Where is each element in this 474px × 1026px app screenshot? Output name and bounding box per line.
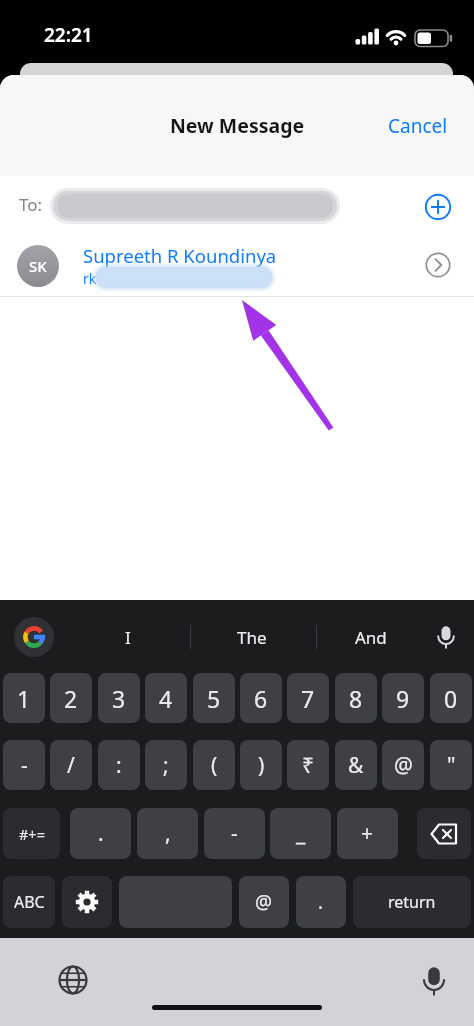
staticText: ABC <box>14 891 45 913</box>
button[interactable] <box>422 249 454 281</box>
staticText: - <box>21 751 28 780</box>
staticText: New Message <box>170 112 305 139</box>
button[interactable]: . <box>70 808 131 859</box>
button[interactable]: 7 <box>287 673 329 723</box>
staticText: rk <box>83 269 97 288</box>
staticText: 0 <box>444 683 458 714</box>
staticText: ( <box>211 751 218 780</box>
button[interactable]: 0 <box>430 673 472 723</box>
button[interactable]: 5 <box>193 673 235 723</box>
button[interactable]: 6 <box>240 673 282 723</box>
staticText: . <box>318 889 324 915</box>
staticText: 7 <box>301 683 315 714</box>
staticText: 9 <box>396 683 410 714</box>
staticText: #+= <box>19 824 45 844</box>
staticText: Supreeth R Koundinya <box>83 243 277 267</box>
button[interactable]: Cancel <box>376 112 460 140</box>
button[interactable]: 3 <box>98 673 140 723</box>
staticText: @ <box>255 889 273 915</box>
button[interactable]: _ <box>270 808 331 859</box>
staticText: _ <box>296 819 306 848</box>
button[interactable] <box>0 232 474 296</box>
button[interactable] <box>0 176 474 232</box>
staticText: ₹ <box>302 751 315 780</box>
button[interactable]: - <box>204 808 265 859</box>
staticText: 5 <box>207 683 221 714</box>
button[interactable]: 8 <box>335 673 377 723</box>
staticText: ; <box>163 751 169 780</box>
button[interactable]: return <box>353 876 471 928</box>
button[interactable]: 2 <box>50 673 92 723</box>
staticText: 6 <box>254 683 268 714</box>
button[interactable]: 1 <box>3 673 45 723</box>
staticText: ) <box>258 751 265 780</box>
button[interactable]: , <box>137 808 198 859</box>
button[interactable]: & <box>335 740 377 790</box>
button[interactable]: ) <box>240 740 282 790</box>
staticText: And <box>355 626 387 649</box>
staticText: @ <box>394 751 413 780</box>
staticText: The <box>237 626 267 649</box>
button[interactable]: @ <box>239 876 289 928</box>
button[interactable] <box>385 948 449 996</box>
button[interactable]: / <box>50 740 92 790</box>
staticText: 8 <box>349 683 363 714</box>
button[interactable]: " <box>430 740 472 790</box>
button[interactable]: #+= <box>3 808 60 859</box>
staticText: - <box>231 819 238 848</box>
button[interactable] <box>62 876 112 928</box>
button[interactable] <box>25 954 89 996</box>
button[interactable] <box>422 191 454 223</box>
staticText: SK <box>29 256 47 276</box>
button[interactable]: ABC <box>3 876 55 928</box>
staticText: Cancel <box>388 113 448 139</box>
button[interactable] <box>417 808 471 859</box>
button[interactable] <box>119 876 232 928</box>
button[interactable]: + <box>337 808 398 859</box>
staticText: . <box>98 819 104 848</box>
button[interactable]: 4 <box>145 673 187 723</box>
staticText: + <box>361 819 374 848</box>
button[interactable]: . <box>296 876 346 928</box>
staticText: 3 <box>112 683 126 714</box>
staticText: 1 <box>17 683 31 714</box>
staticText: 22:21 <box>44 22 93 48</box>
staticText: & <box>348 751 364 780</box>
staticText: I <box>125 626 131 649</box>
button[interactable]: ; <box>145 740 187 790</box>
staticText: / <box>67 751 75 780</box>
staticText: To: <box>19 193 43 216</box>
staticText: 4 <box>159 683 173 714</box>
staticText: return <box>388 891 436 913</box>
button[interactable]: ( <box>193 740 235 790</box>
staticText: : <box>116 751 122 780</box>
staticText: 2 <box>64 683 78 714</box>
button[interactable]: - <box>3 740 45 790</box>
button[interactable]: : <box>98 740 140 790</box>
staticText: " <box>447 751 456 780</box>
button[interactable]: 9 <box>382 673 424 723</box>
button[interactable]: ₹ <box>287 740 329 790</box>
staticText: , <box>165 819 171 848</box>
button[interactable]: @ <box>382 740 424 790</box>
